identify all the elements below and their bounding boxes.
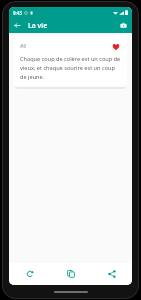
button[interactable]: Back: [11, 19, 24, 32]
staticText: La vie: [28, 21, 48, 31]
button[interactable]: #8: [14, 36, 127, 87]
button[interactable]: Share: [91, 263, 132, 285]
button[interactable]: Collection: [117, 19, 130, 32]
staticText: Chaque coup de colère est un coup de vie…: [20, 55, 121, 80]
button[interactable]: Favourite: [110, 41, 121, 52]
button[interactable]: Copy: [50, 263, 91, 285]
button[interactable]: Refresh: [9, 263, 50, 285]
staticText: 9:43: [13, 10, 22, 16]
staticText: #8: [20, 43, 27, 50]
